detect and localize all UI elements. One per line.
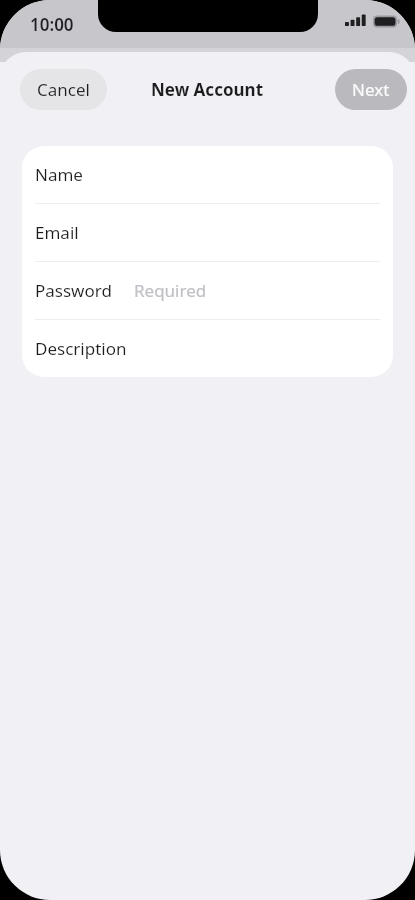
staticText: Email bbox=[35, 221, 79, 244]
staticText: Next bbox=[352, 78, 390, 101]
staticText: Name bbox=[35, 163, 83, 186]
staticText: New Account bbox=[151, 78, 264, 101]
button[interactable]: Email bbox=[22, 204, 393, 261]
staticText: Cancel bbox=[37, 78, 90, 101]
button[interactable]: Cancel bbox=[20, 69, 107, 110]
staticText: 10:00 bbox=[30, 13, 74, 36]
button[interactable]: Description bbox=[22, 320, 393, 377]
staticText: Required bbox=[134, 279, 207, 302]
staticText: Password bbox=[35, 279, 112, 302]
button[interactable]: Name bbox=[22, 146, 393, 203]
button[interactable]: Next bbox=[335, 69, 407, 110]
staticText: Description bbox=[35, 337, 127, 360]
button[interactable]: Password bbox=[22, 262, 393, 319]
